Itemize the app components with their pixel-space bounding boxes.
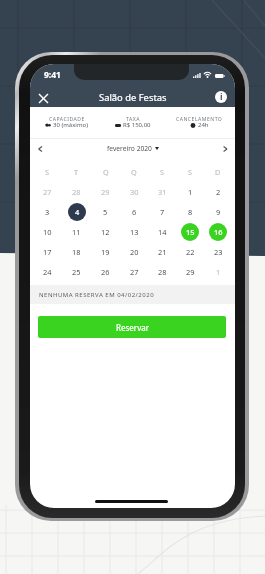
- staticText: 23: [214, 247, 223, 257]
- button[interactable]: 12: [91, 222, 120, 242]
- button[interactable]: 27: [33, 182, 62, 202]
- button[interactable]: 16: [204, 222, 232, 242]
- button[interactable]: TAXA: [100, 116, 166, 131]
- staticText: 27: [43, 187, 52, 197]
- staticText: 22: [186, 247, 195, 257]
- staticText: 31: [158, 187, 167, 197]
- staticText: 17: [43, 247, 52, 257]
- button[interactable]: 10: [33, 222, 62, 242]
- staticText: 29: [186, 267, 195, 277]
- staticText: Salão de Festas: [99, 91, 167, 104]
- staticText: S: [45, 167, 50, 177]
- button[interactable]: Previous month: [32, 141, 48, 157]
- staticText: 13: [130, 227, 139, 237]
- staticText: 14: [158, 227, 167, 237]
- staticText: 30 (máximo): [53, 121, 88, 129]
- staticText: 29: [101, 187, 110, 197]
- staticText: 2: [216, 187, 221, 197]
- button[interactable]: 21: [148, 242, 176, 262]
- staticText: 8: [188, 207, 193, 217]
- staticText: 20: [130, 247, 139, 257]
- staticText: S: [188, 167, 193, 177]
- staticText: 12: [101, 227, 110, 237]
- staticText: 30: [130, 187, 139, 197]
- button[interactable]: 13: [120, 222, 148, 242]
- staticText: 7: [160, 207, 165, 217]
- button[interactable]: 29: [91, 182, 120, 202]
- staticText: S: [160, 167, 165, 177]
- button[interactable]: 5: [91, 202, 120, 222]
- staticText: 19: [101, 247, 110, 257]
- button[interactable]: 26: [91, 262, 120, 282]
- button[interactable]: 6: [120, 202, 148, 222]
- button[interactable]: 8: [176, 202, 204, 222]
- button[interactable]: Information: [212, 88, 230, 106]
- staticText: i: [220, 91, 223, 103]
- button[interactable]: 9: [204, 202, 232, 222]
- staticText: 11: [72, 227, 81, 237]
- staticText: 9:41: [44, 69, 61, 81]
- staticText: 18: [72, 247, 81, 257]
- button[interactable]: 19: [91, 242, 120, 262]
- staticText: 28: [158, 267, 167, 277]
- staticText: 16: [214, 227, 223, 237]
- button[interactable]: 17: [33, 242, 62, 262]
- button[interactable]: 18: [62, 242, 91, 262]
- staticText: T: [74, 167, 79, 177]
- button[interactable]: 29: [176, 262, 204, 282]
- button[interactable]: 27: [120, 262, 148, 282]
- staticText: 10: [43, 227, 52, 237]
- staticText: TAXA: [126, 116, 140, 123]
- button[interactable]: 20: [120, 242, 148, 262]
- button[interactable]: Next month: [217, 141, 233, 157]
- staticText: 24h: [198, 121, 209, 129]
- staticText: 28: [72, 187, 81, 197]
- button[interactable]: 28: [62, 182, 91, 202]
- staticText: 24: [43, 267, 52, 277]
- staticText: Reservar: [116, 322, 149, 333]
- button[interactable]: 25: [62, 262, 91, 282]
- staticText: NENHUMA RESERVA EM 04/02/2020: [39, 291, 155, 299]
- staticText: 26: [101, 267, 110, 277]
- button[interactable]: 7: [148, 202, 176, 222]
- button[interactable]: 14: [148, 222, 176, 242]
- staticText: 1: [216, 267, 221, 277]
- staticText: 25: [72, 267, 81, 277]
- staticText: 4: [75, 207, 80, 217]
- staticText: R$ 150,00: [123, 121, 151, 129]
- button[interactable]: 4: [62, 202, 91, 222]
- button[interactable]: 3: [33, 202, 62, 222]
- button[interactable]: 22: [176, 242, 204, 262]
- staticText: CANCELAMENTO: [176, 116, 223, 123]
- button[interactable]: 31: [148, 182, 176, 202]
- staticText: 3: [45, 207, 50, 217]
- button[interactable]: 23: [204, 242, 232, 262]
- button[interactable]: 30: [120, 182, 148, 202]
- button[interactable]: 15: [176, 222, 204, 242]
- button[interactable]: 28: [148, 262, 176, 282]
- button[interactable]: 1: [204, 262, 232, 282]
- button[interactable]: 24: [33, 262, 62, 282]
- staticText: Q: [131, 167, 137, 177]
- staticText: 1: [188, 187, 193, 197]
- staticText: 15: [186, 227, 195, 237]
- button[interactable]: Reservar: [38, 316, 226, 338]
- button[interactable]: 1: [176, 182, 204, 202]
- button[interactable]: CAPACIDADE: [33, 116, 100, 131]
- staticText: 5: [103, 207, 108, 217]
- staticText: 21: [158, 247, 167, 257]
- button[interactable]: CANCELAMENTO: [166, 116, 232, 131]
- staticText: 6: [132, 207, 137, 217]
- staticText: fevereiro 2020: [107, 144, 152, 153]
- staticText: CAPACIDADE: [49, 116, 85, 123]
- staticText: 27: [130, 267, 139, 277]
- button[interactable]: 2: [204, 182, 232, 202]
- staticText: 9: [216, 207, 221, 217]
- staticText: Q: [103, 167, 109, 177]
- button[interactable]: fevereiro 2020: [107, 144, 159, 153]
- button[interactable]: Close: [34, 89, 52, 107]
- button[interactable]: 11: [62, 222, 91, 242]
- staticText: D: [215, 167, 221, 177]
